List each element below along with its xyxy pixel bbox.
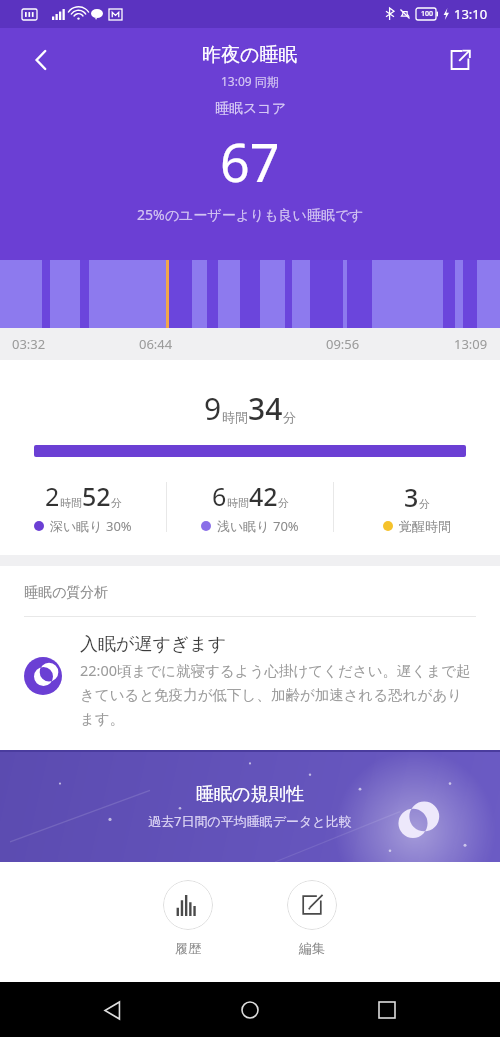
button[interactable]: 睡眠の規則性: [0, 750, 500, 862]
staticText: 浅い眠り 70%: [217, 517, 299, 535]
staticText: 編集: [299, 940, 325, 956]
staticText: 06:44: [139, 335, 173, 353]
staticText: 時間: [222, 409, 248, 425]
button[interactable]: Home: [226, 986, 274, 1034]
staticText: 分: [278, 496, 289, 510]
staticText: 2: [45, 479, 60, 513]
button[interactable]: Recent apps: [363, 986, 411, 1034]
staticText: 昨夜の睡眠: [202, 43, 298, 67]
staticText: 9: [204, 388, 222, 429]
staticText: 分: [111, 496, 122, 510]
staticText: 52: [82, 479, 111, 513]
staticText: 22:00頃までに就寝するよう心掛けてください。遅くまで起きていると免疫力が低下…: [80, 660, 476, 728]
staticText: 履歴: [175, 940, 201, 956]
staticText: 13:09: [454, 335, 488, 353]
button[interactable]: Back: [89, 986, 137, 1034]
staticText: 睡眠の規則性: [196, 783, 305, 806]
other: Edit: [287, 880, 337, 930]
staticText: 3: [404, 480, 419, 514]
staticText: 100: [421, 9, 434, 19]
staticText: 過去7日間の平均睡眠データと比較: [148, 812, 352, 830]
staticText: 時間: [227, 496, 249, 510]
staticText: 覚醒時間: [399, 518, 451, 534]
staticText: 入眠が遅すぎます: [80, 633, 227, 656]
staticText: 67: [220, 126, 280, 197]
button[interactable]: Share: [438, 38, 482, 82]
staticText: 25%のユーザーよりも良い睡眠です: [137, 205, 364, 224]
button[interactable]: Back: [20, 38, 64, 82]
staticText: 分: [419, 497, 430, 511]
staticText: 03:32: [12, 335, 46, 353]
staticText: 13:10: [454, 5, 488, 23]
staticText: 睡眠スコア: [215, 100, 286, 118]
staticText: 42: [249, 479, 278, 513]
staticText: 13:09 同期: [221, 73, 279, 89]
staticText: 34: [248, 388, 283, 429]
staticText: 睡眠の質分析: [24, 584, 109, 602]
staticText: 09:56: [326, 335, 360, 353]
button[interactable]: Edit: [279, 880, 345, 956]
other: History: [163, 880, 213, 930]
button[interactable]: History: [155, 880, 221, 956]
staticText: 6: [212, 479, 227, 513]
staticText: 分: [283, 409, 296, 425]
staticText: 深い眠り 30%: [50, 517, 132, 535]
staticText: 時間: [60, 496, 82, 510]
